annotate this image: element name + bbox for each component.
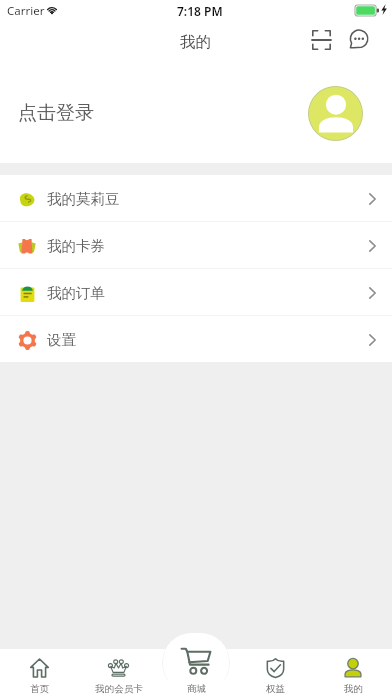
button[interactable]: 我的卡券: [0, 222, 392, 269]
staticText: 7:18 PM: [177, 3, 223, 19]
staticText: 我的订单: [47, 284, 105, 302]
staticText: 商城: [187, 683, 206, 693]
button[interactable]: 我的订单: [0, 269, 392, 316]
button[interactable]: 商城: [162, 633, 230, 693]
staticText: 我的会员卡: [95, 683, 143, 695]
staticText: 我的莫莉豆: [47, 190, 120, 208]
staticText: 首页: [30, 683, 49, 695]
button[interactable]: 首页: [0, 649, 79, 696]
staticText: 我的: [344, 683, 363, 695]
staticText: 权益: [266, 683, 285, 695]
staticText: 设置: [47, 331, 76, 349]
button[interactable]: 我的莫莉豆: [0, 175, 392, 222]
button[interactable]: 我的: [314, 649, 392, 696]
staticText: 我的: [180, 32, 211, 52]
button[interactable]: 设置: [0, 316, 392, 363]
button[interactable]: 点击登录: [0, 64, 392, 163]
button[interactable]: Scan: [307, 26, 335, 54]
button[interactable]: Messages: [344, 26, 372, 54]
staticText: 我的卡券: [47, 237, 105, 255]
staticText: Carrier: [7, 3, 45, 19]
button[interactable]: 我的会员卡: [79, 649, 158, 696]
button[interactable]: 权益: [236, 649, 314, 696]
staticText: 点击登录: [18, 101, 94, 125]
